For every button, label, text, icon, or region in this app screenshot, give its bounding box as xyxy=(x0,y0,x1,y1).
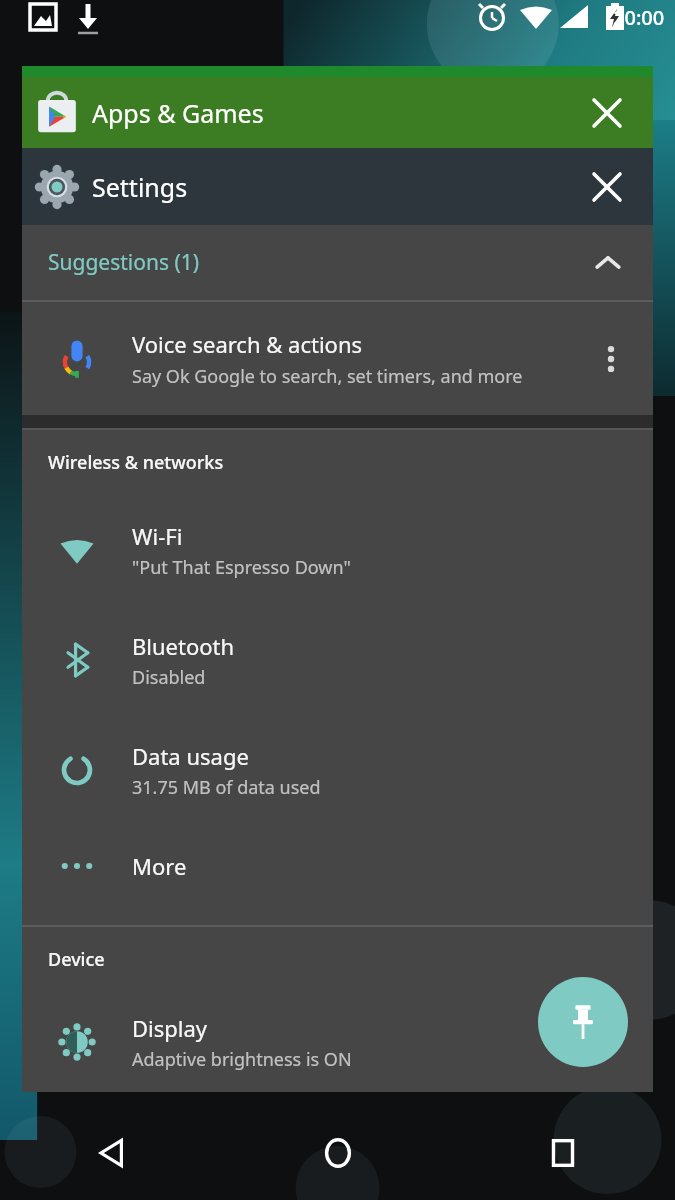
button[interactable]: Pin xyxy=(538,977,628,1067)
staticText: Voice search & actions xyxy=(132,329,363,359)
staticText: Wireless & networks xyxy=(48,450,224,475)
staticText: Device xyxy=(48,947,105,972)
staticText: 31.75 MB of data used xyxy=(132,775,321,800)
staticText: 20:00 xyxy=(613,4,665,31)
button[interactable]: Close Apps & Games xyxy=(575,81,639,145)
staticText: Apps & Games xyxy=(92,96,575,130)
staticText: More xyxy=(132,851,187,881)
staticText: Data usage xyxy=(132,741,249,771)
staticText: Wi-Fi xyxy=(132,521,183,551)
button[interactable]: Back xyxy=(0,1105,225,1200)
button[interactable]: Wi-Fi xyxy=(22,495,653,605)
button[interactable]: Close Settings xyxy=(575,155,639,219)
staticText: "Put That Espresso Down" xyxy=(132,555,351,580)
staticText: Disabled xyxy=(132,665,206,690)
button[interactable]: Data usage xyxy=(22,715,653,825)
staticText: Say Ok Google to search, set timers, and… xyxy=(132,364,523,389)
button[interactable]: More xyxy=(22,825,653,907)
button[interactable]: Bluetooth xyxy=(22,605,653,715)
button[interactable]: Suggestions (1) xyxy=(22,225,653,300)
button[interactable]: Voice search & actions xyxy=(22,302,653,415)
staticText: Display xyxy=(132,1013,208,1043)
staticText: Suggestions (1) xyxy=(48,248,591,277)
button[interactable]: Recent apps xyxy=(450,1105,675,1200)
button[interactable]: Display xyxy=(22,992,653,1092)
button[interactable]: Home xyxy=(225,1105,450,1200)
staticText: Settings xyxy=(92,170,575,204)
staticText: Bluetooth xyxy=(132,631,235,661)
staticText: Adaptive brightness is ON xyxy=(132,1047,352,1072)
button[interactable]: More options xyxy=(583,331,639,387)
